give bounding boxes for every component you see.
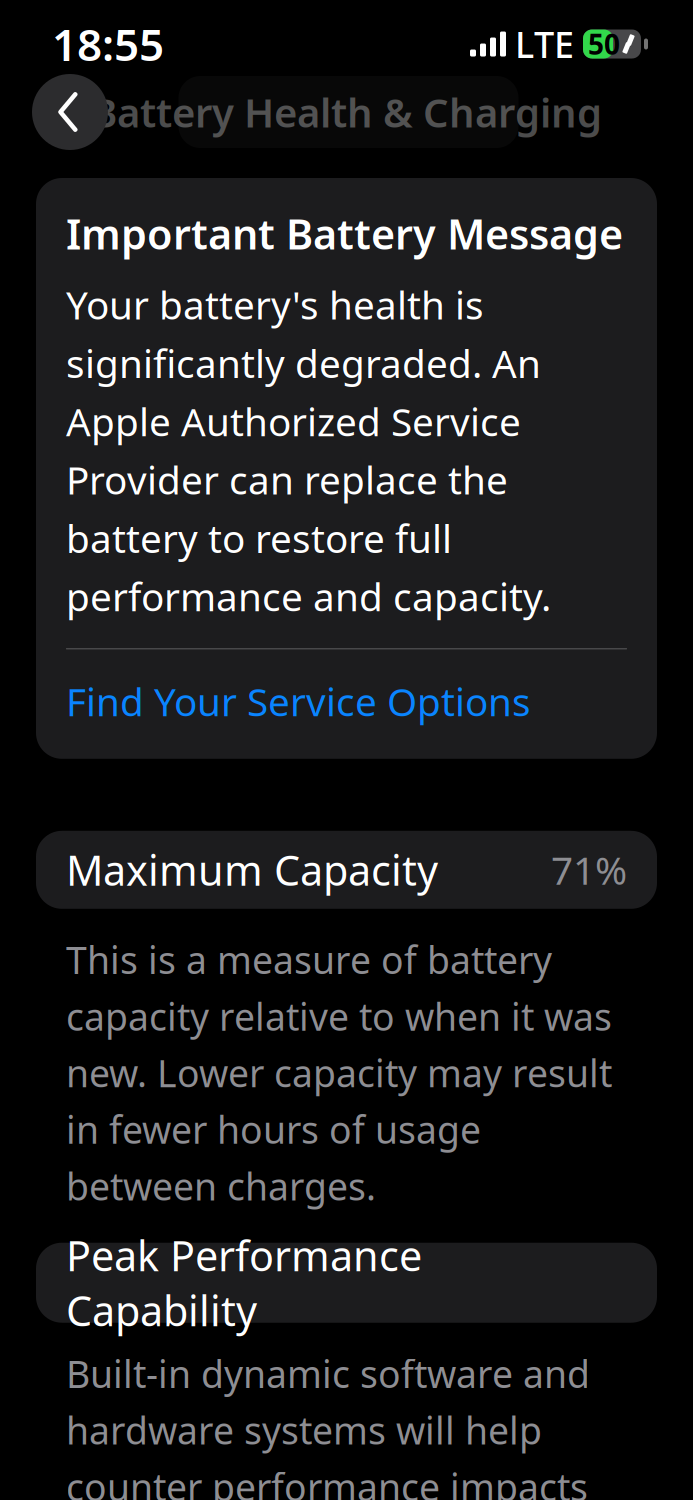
staticText: 50: [588, 25, 620, 63]
button[interactable]: Back: [32, 74, 108, 150]
staticText: LTE: [515, 20, 574, 68]
staticText: Battery Health & Charging: [91, 85, 602, 138]
staticText: This is a measure of battery capacity re…: [66, 935, 612, 1211]
staticText: Maximum Capacity: [66, 842, 438, 897]
staticText: Peak Performance Capability: [66, 1228, 422, 1338]
staticText: 71%: [551, 844, 627, 895]
staticText: Built-in dynamic software and hardware s…: [66, 1349, 622, 1500]
button[interactable]: Find Your Service Options: [66, 659, 627, 743]
staticText: Your battery's health is significantly d…: [66, 279, 551, 622]
button[interactable]: Maximum Capacity: [36, 831, 657, 909]
button[interactable]: Peak Performance Capability: [36, 1243, 657, 1323]
staticText: 18:55: [52, 15, 164, 73]
staticText: Important Battery Message: [66, 206, 623, 261]
staticText: Find Your Service Options: [66, 675, 531, 727]
